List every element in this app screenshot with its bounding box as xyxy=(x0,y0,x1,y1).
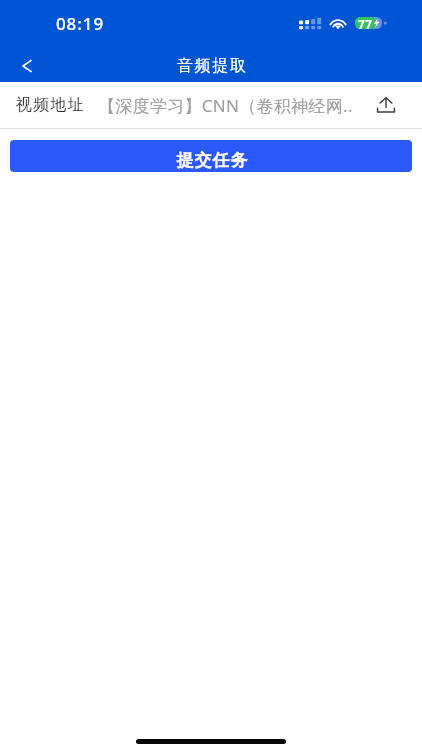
staticText: 视频地址 xyxy=(16,95,85,115)
button[interactable]: Back xyxy=(6,49,47,82)
button[interactable]: 视频地址 xyxy=(0,82,422,128)
staticText: 77 xyxy=(358,17,373,29)
button[interactable]: Upload xyxy=(376,95,396,115)
button[interactable]: 提交任务 xyxy=(10,140,412,172)
staticText: 提交任务 xyxy=(176,150,248,171)
staticText: 音频提取 xyxy=(177,56,248,76)
staticText: 08:19 xyxy=(56,12,105,35)
staticText: 【深度学习】CNN（卷积神经网... xyxy=(98,94,354,117)
